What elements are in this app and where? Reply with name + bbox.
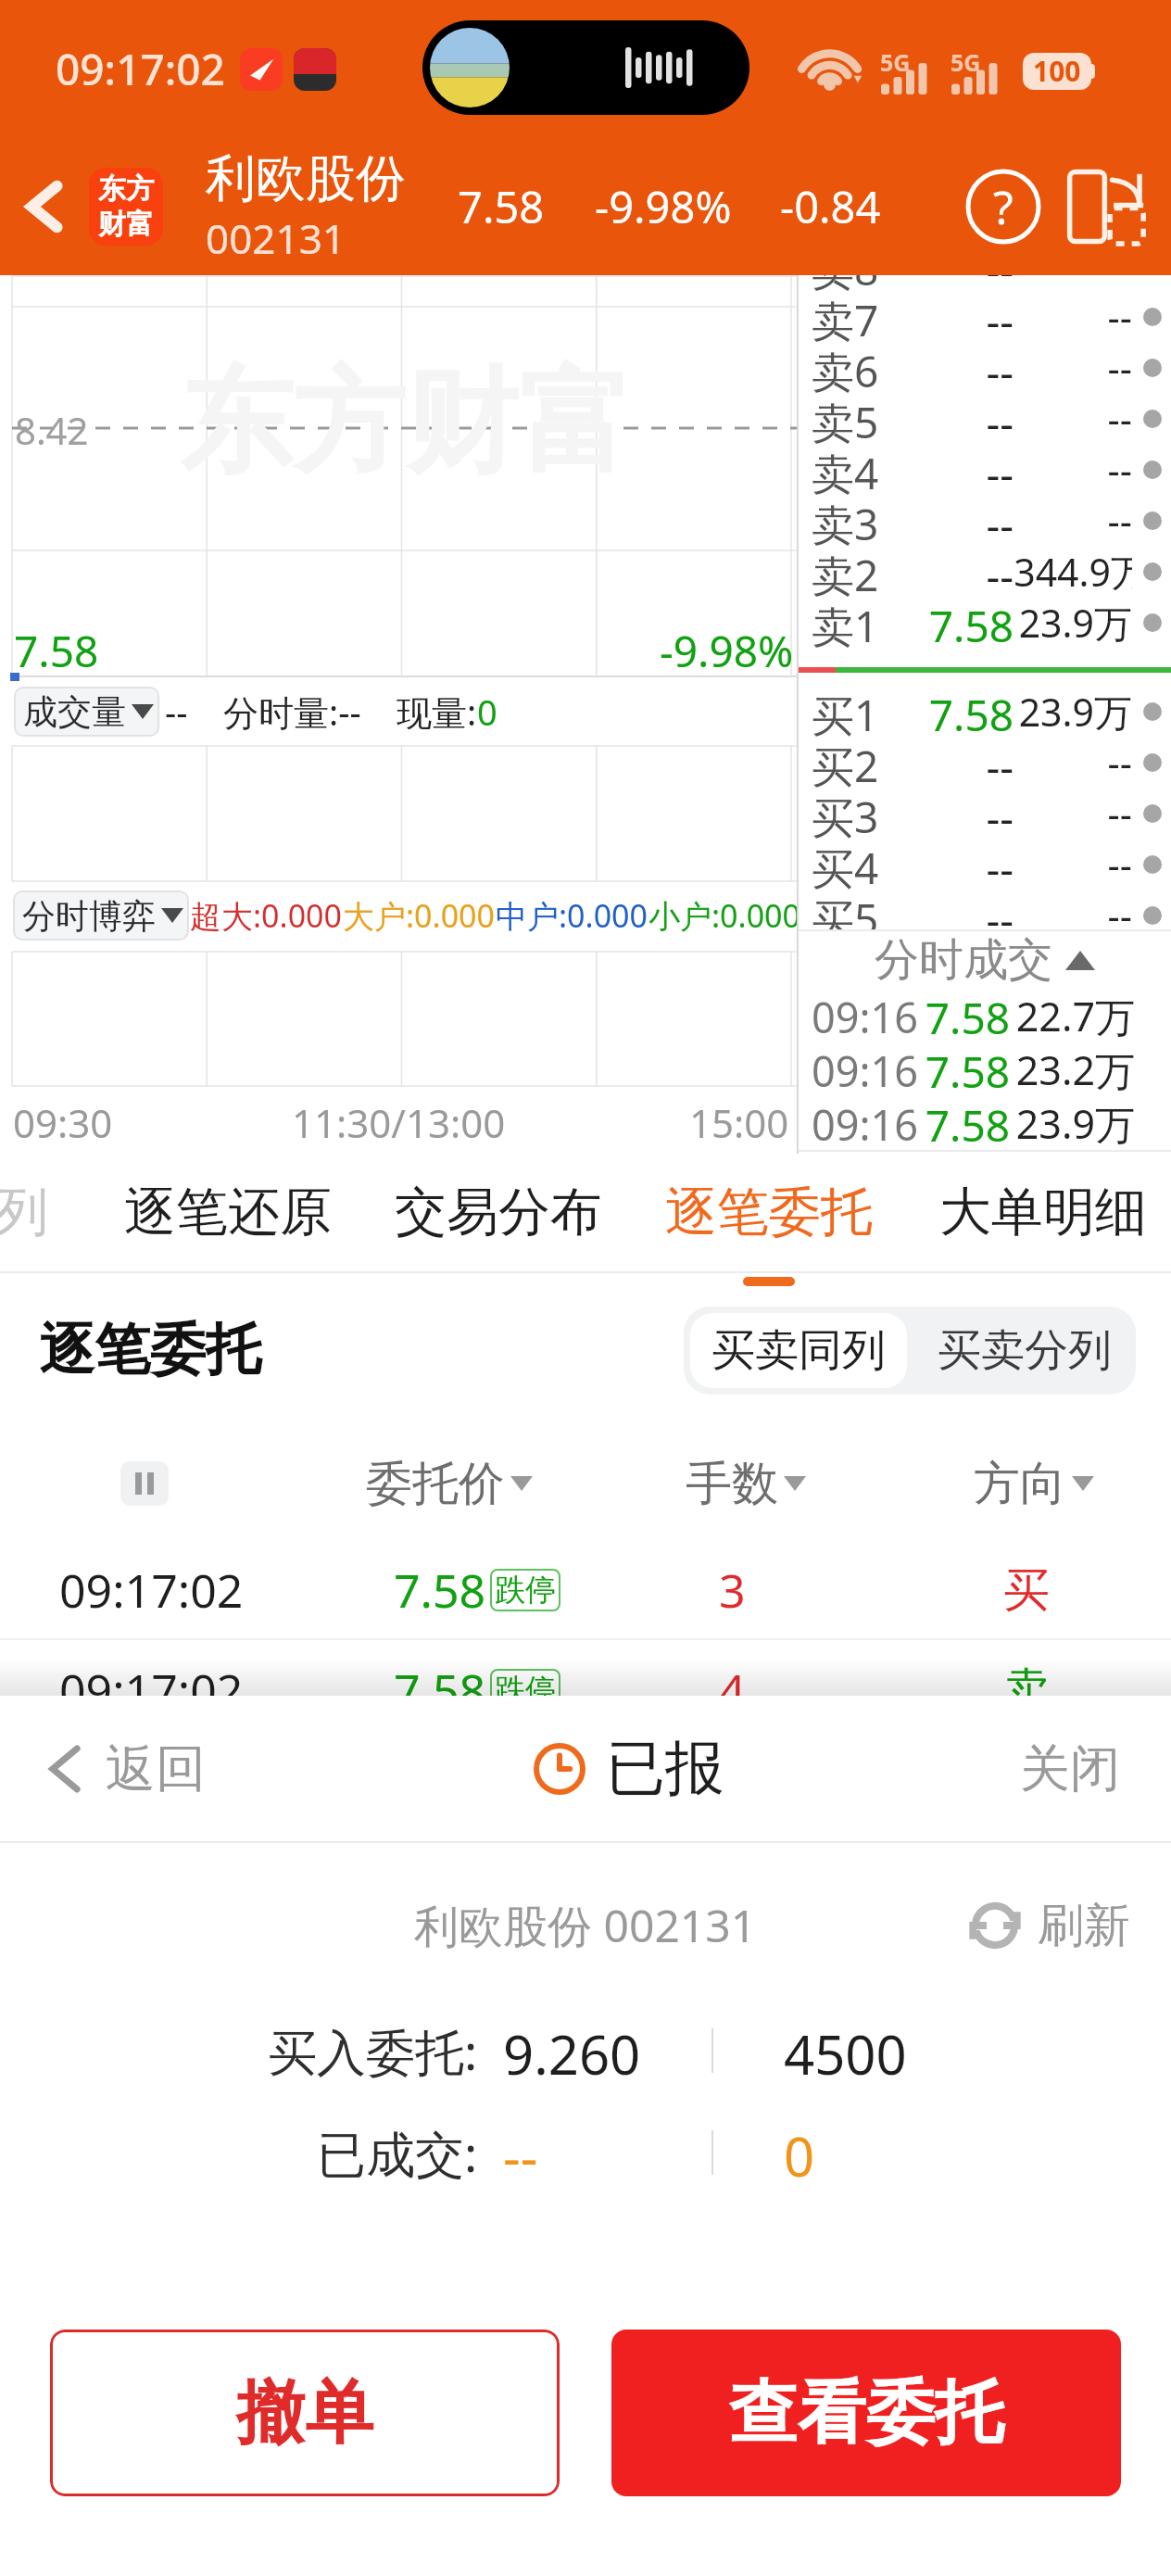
staticText: 成交量 — [23, 690, 126, 734]
staticText: 7.58 — [913, 989, 1010, 1042]
staticText: -- — [1014, 444, 1132, 495]
button[interactable]: 委托价 — [366, 1433, 533, 1534]
staticText: 7.58 — [910, 597, 1014, 648]
staticText: 逐笔委托 — [39, 1315, 261, 1385]
staticText: -- — [1014, 890, 1132, 929]
staticText: 卖5 — [812, 393, 879, 444]
staticText: 大户:0.000 — [343, 894, 496, 937]
staticText: 分时博弈 — [22, 895, 156, 937]
staticText: 23.9万 — [1014, 597, 1132, 648]
staticText: -- — [893, 444, 1014, 495]
button[interactable]: 分时成交 — [799, 931, 1171, 989]
staticText: 卖4 — [812, 444, 879, 495]
button[interactable]: 卖2 — [799, 546, 1171, 597]
button[interactable]: 关闭 — [1020, 1737, 1120, 1800]
staticText: -- — [1014, 788, 1132, 839]
button[interactable]: 买5 — [799, 890, 1171, 929]
button[interactable]: 逐笔委托 — [665, 1180, 873, 1245]
button[interactable]: 09:17:02 — [0, 1540, 1171, 1640]
staticText: 344.9万 — [1014, 546, 1132, 597]
staticText: -- — [1014, 495, 1132, 546]
staticText: 09:16 — [812, 1042, 919, 1096]
button[interactable]: 撤单 — [50, 2330, 560, 2496]
button[interactable]: 大单明细 — [939, 1180, 1147, 1245]
staticText: -- — [893, 393, 1014, 444]
staticText: 09:16 — [812, 1096, 919, 1150]
button[interactable]: 方向 — [974, 1433, 1094, 1534]
staticText: 返回 — [106, 1737, 206, 1800]
staticText: 002131 — [206, 210, 346, 266]
button[interactable]: 分时博弈 — [22, 890, 183, 941]
button[interactable]: 09:17:02 — [0, 1640, 1171, 1740]
staticText: 9.260 — [503, 2017, 641, 2084]
staticText: 财富 — [98, 207, 154, 242]
button[interactable]: 手数 — [686, 1433, 806, 1534]
staticText: -- — [1014, 291, 1132, 342]
staticText: 0 — [784, 2119, 815, 2186]
button[interactable]: 卖4 — [799, 444, 1171, 495]
button[interactable]: Help — [952, 156, 1054, 258]
staticText: 已成交: — [317, 2119, 478, 2186]
button[interactable]: 卖3 — [799, 495, 1171, 546]
staticText: 已报 — [606, 1731, 724, 1806]
staticText: 09:17:02 — [59, 1559, 244, 1622]
staticText: 09:17:02 — [59, 1659, 244, 1722]
staticText: 现量: — [397, 688, 477, 736]
button[interactable]: 买卖同列 — [690, 1313, 907, 1388]
staticText: 7.58 — [394, 1559, 486, 1622]
staticText: 22.7万 — [1015, 989, 1134, 1042]
staticText: -- — [893, 839, 1014, 890]
button[interactable]: 买卖分列 — [913, 1307, 1136, 1395]
staticText: 东方 — [98, 171, 154, 207]
button[interactable]: 卖6 — [799, 342, 1171, 393]
staticText: 手数 — [686, 1455, 778, 1513]
button[interactable]: 交易分布 — [395, 1180, 602, 1245]
staticText: 买2 — [812, 737, 879, 788]
staticText: -- — [893, 737, 1014, 788]
staticText: -- — [893, 342, 1014, 393]
staticText: 7.58 — [913, 1096, 1010, 1150]
staticText: 刷新 — [1038, 1897, 1130, 1955]
button[interactable]: 返回 — [44, 1737, 206, 1800]
button[interactable]: 查看委托 — [611, 2330, 1121, 2496]
staticText: 卖6 — [812, 342, 879, 393]
staticText: -9.98% — [595, 177, 732, 236]
button[interactable]: 卖7 — [799, 291, 1171, 342]
staticText: 逐笔还原 — [124, 1180, 332, 1245]
button[interactable]: Pause — [120, 1461, 169, 1506]
button[interactable]: 卖5 — [799, 393, 1171, 444]
button[interactable]: 买4 — [799, 839, 1171, 890]
button[interactable]: 卖1 — [799, 597, 1171, 648]
staticText: 卖7 — [812, 291, 879, 342]
staticText: -- — [910, 546, 1014, 597]
staticText: -9.98% — [660, 622, 794, 680]
staticText: 买 — [1003, 1561, 1050, 1620]
button[interactable]: 买2 — [799, 737, 1171, 788]
staticText: 09:17:02 — [56, 40, 225, 98]
staticText: 中户:0.000 — [496, 894, 648, 937]
staticText: 方向 — [974, 1455, 1066, 1513]
button[interactable]: 买3 — [799, 788, 1171, 839]
button[interactable]: 卖8 — [799, 275, 1171, 291]
button[interactable]: 09:16 — [799, 1096, 1171, 1150]
staticText: 3 — [719, 1559, 746, 1622]
button[interactable]: 09:16 — [799, 989, 1171, 1042]
button[interactable]: Back — [0, 137, 89, 275]
staticText: -- — [893, 890, 1014, 929]
button[interactable]: Rotate screen — [1054, 155, 1158, 259]
staticText: 4 — [719, 1659, 746, 1722]
staticText: -- — [503, 2119, 538, 2186]
button[interactable]: 买1 — [799, 686, 1171, 737]
button[interactable]: 刷新 — [965, 1896, 1130, 1955]
button[interactable]: 09:16 — [799, 1042, 1171, 1096]
staticText: 4500 — [784, 2017, 907, 2084]
staticText: 7.58 — [458, 177, 545, 236]
staticText: 超大:0.000 — [190, 894, 343, 937]
button[interactable]: 成交量 — [23, 687, 154, 737]
button[interactable]: 逐笔还原 — [124, 1180, 332, 1245]
staticText: 查看委托 — [729, 2370, 1003, 2456]
staticText: 卖 — [1003, 1661, 1050, 1720]
staticText: 09:16 — [812, 989, 919, 1042]
staticText: 买5 — [812, 890, 879, 929]
staticText: 买卖同列 — [711, 1323, 886, 1378]
